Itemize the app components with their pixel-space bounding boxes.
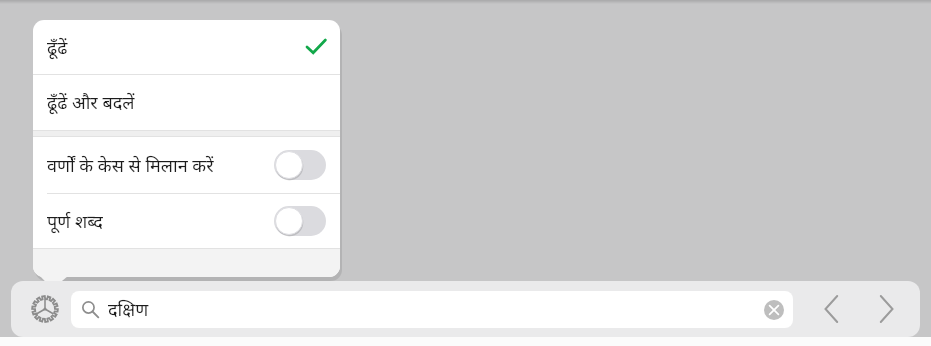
staticText: ढूँढें और बदलें (47, 90, 135, 115)
button[interactable] (274, 206, 326, 236)
button[interactable]: Search options (23, 287, 67, 331)
button[interactable]: ढूँढें (33, 20, 340, 74)
button[interactable]: Clear search (762, 298, 786, 322)
button[interactable] (274, 150, 326, 180)
button[interactable]: वर्णों के केस से मिलान करें (33, 137, 340, 193)
button[interactable]: दक्षिण (71, 291, 793, 328)
button[interactable]: ढूँढें और बदलें (33, 75, 340, 130)
staticText: ढूँढें (47, 35, 68, 60)
button[interactable]: Next result (863, 287, 910, 331)
button[interactable]: पूर्ण शब्द (33, 194, 340, 248)
staticText: वर्णों के केस से मिलान करें (47, 153, 214, 178)
staticText: दक्षिण (108, 297, 149, 322)
button[interactable]: Previous result (808, 287, 855, 331)
staticText: पूर्ण शब्द (47, 209, 103, 234)
